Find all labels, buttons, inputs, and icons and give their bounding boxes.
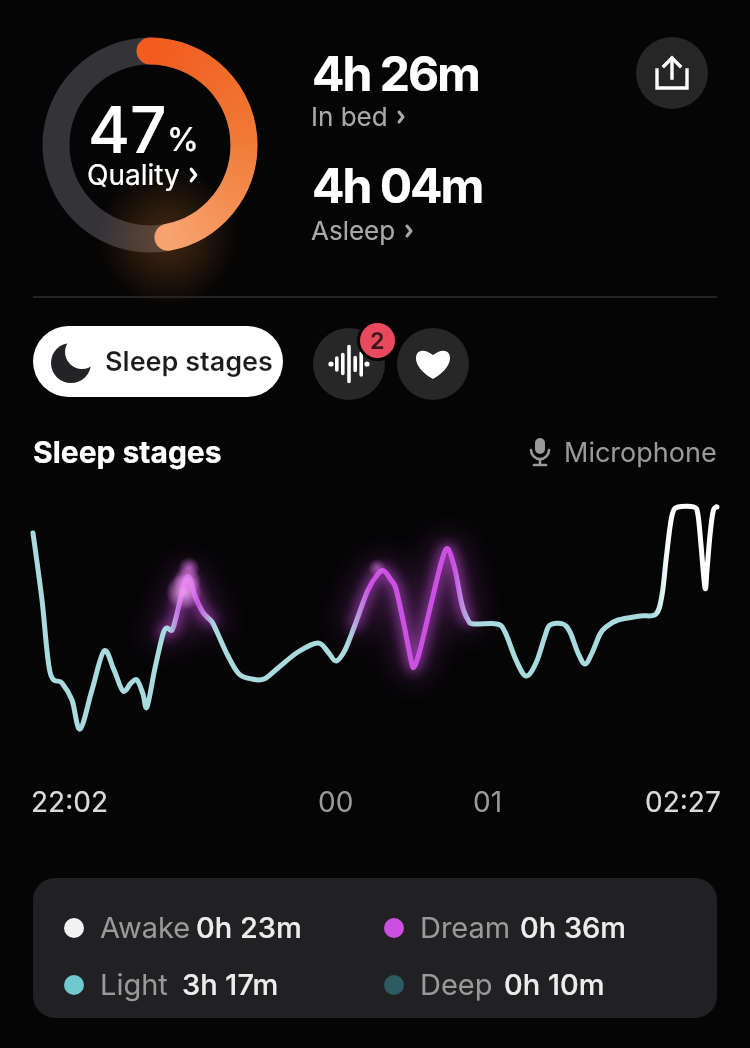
staticText: 00 xyxy=(318,785,354,819)
button[interactable]: In bed xyxy=(311,101,406,132)
staticText: In bed xyxy=(311,101,388,132)
button[interactable]: Sleep stages xyxy=(33,326,283,397)
staticText: Asleep xyxy=(311,215,396,246)
staticText: 2 xyxy=(370,327,385,355)
staticText: 4h 04m xyxy=(312,156,483,214)
button[interactable] xyxy=(313,328,385,400)
staticText: Dream xyxy=(420,910,511,945)
staticText: 02:27 xyxy=(645,785,721,819)
button[interactable]: Quality xyxy=(36,158,250,192)
staticText: 47 xyxy=(88,91,167,168)
staticText: 01 xyxy=(473,785,503,819)
staticText: 3h 17m xyxy=(182,967,279,1002)
staticText: Sleep stages xyxy=(33,434,222,470)
staticText: % xyxy=(167,120,199,159)
staticText: 4h 26m xyxy=(312,44,479,102)
staticText: Light xyxy=(100,967,168,1002)
staticText: 0h 10m xyxy=(504,967,605,1002)
staticText: Deep xyxy=(420,967,493,1002)
button[interactable] xyxy=(397,328,469,400)
staticText: 0h 23m xyxy=(196,910,302,945)
button[interactable]: Microphone xyxy=(528,436,717,469)
staticText: Quality xyxy=(87,158,180,192)
staticText: 22:02 xyxy=(31,785,108,819)
staticText: Microphone xyxy=(564,436,717,469)
staticText: 0h 36m xyxy=(520,910,627,945)
button[interactable]: Asleep xyxy=(311,215,414,246)
button[interactable] xyxy=(636,37,708,109)
staticText: Awake xyxy=(100,910,191,945)
staticText: Sleep stages xyxy=(105,345,273,378)
